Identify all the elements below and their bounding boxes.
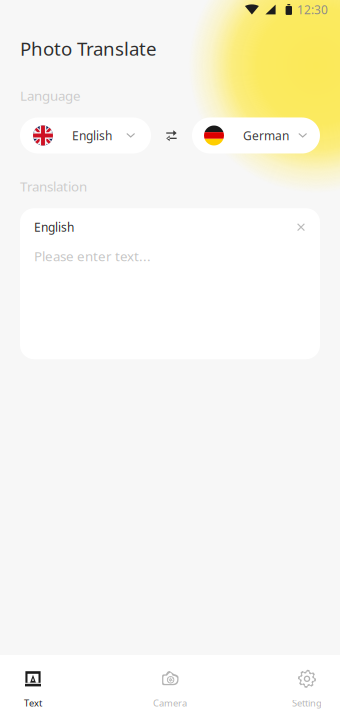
staticText: Setting xyxy=(292,697,322,709)
staticText: Language xyxy=(20,87,81,104)
button[interactable]: English xyxy=(20,117,151,153)
staticText: Photo Translate xyxy=(20,36,157,61)
staticText: English xyxy=(72,127,112,143)
button[interactable]: Setting xyxy=(287,656,327,718)
staticText: German xyxy=(243,127,289,143)
button[interactable]: Text xyxy=(13,656,53,718)
staticText: English xyxy=(34,219,74,235)
staticText: 12:30 xyxy=(297,1,328,17)
staticText: Camera xyxy=(153,697,187,709)
button[interactable]: Clear text xyxy=(294,220,308,234)
button[interactable]: Camera xyxy=(150,656,190,718)
staticText: Translation xyxy=(20,177,87,195)
staticText: Text xyxy=(24,697,42,709)
button[interactable]: German xyxy=(192,117,320,153)
staticText: Please enter text... xyxy=(34,247,151,265)
